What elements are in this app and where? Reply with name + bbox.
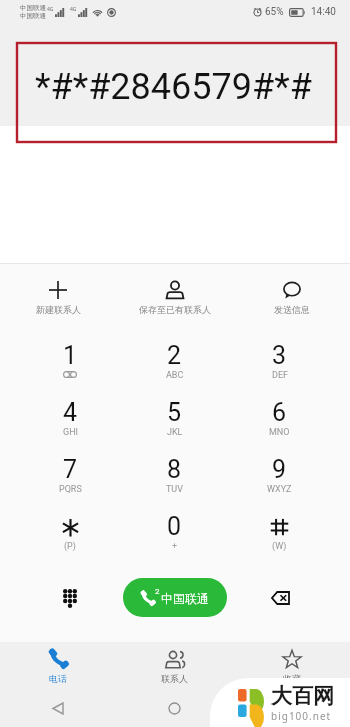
staticText: JKL <box>167 427 183 438</box>
button[interactable]: 保存至已有联系人 <box>116 264 233 331</box>
staticText: 65% <box>265 6 284 18</box>
button[interactable]: 新建联系人 <box>0 264 116 331</box>
staticText: *#*#2846579#*# <box>35 66 312 108</box>
staticText: MNO <box>269 427 290 438</box>
staticText: 2 <box>167 341 182 370</box>
staticText: 中国联通 <box>161 591 209 606</box>
button[interactable]: Home <box>116 690 233 727</box>
button[interactable]: 7 <box>18 445 122 502</box>
button[interactable]: 6 <box>227 388 332 445</box>
button[interactable]: 3 <box>227 331 332 388</box>
staticText: 中国联通 <box>20 4 46 12</box>
staticText: (W) <box>272 541 287 552</box>
staticText: big100.net <box>271 709 332 723</box>
staticText: 新建联系人 <box>36 304 81 315</box>
button[interactable]: 8 <box>122 445 227 502</box>
button[interactable]: 9 <box>227 445 332 502</box>
staticText: 8 <box>167 455 182 484</box>
staticText: 2 <box>155 587 160 596</box>
staticText: 4G <box>70 6 77 13</box>
button[interactable]: Recents <box>233 690 350 727</box>
staticText: 联系人 <box>161 673 188 684</box>
staticText: 9 <box>272 455 287 484</box>
staticText: (P) <box>64 541 76 552</box>
staticText: ABC <box>166 370 184 381</box>
button[interactable]: (P) <box>18 502 122 559</box>
staticText: GHI <box>63 427 78 438</box>
staticText: PQRS <box>59 484 82 495</box>
staticText: 3 <box>272 341 287 370</box>
staticText: 大百网 <box>271 683 334 709</box>
staticText: 发送信息 <box>274 304 310 315</box>
staticText: 收藏 <box>283 673 301 684</box>
staticText: 4 <box>63 398 78 427</box>
button[interactable]: 2 <box>122 331 227 388</box>
button[interactable]: 联系人 <box>116 642 233 690</box>
staticText: + <box>172 541 178 552</box>
button[interactable]: 5 <box>122 388 227 445</box>
button[interactable]: 2 <box>123 578 227 617</box>
button[interactable]: 1 <box>18 331 122 388</box>
staticText: 5 <box>167 398 182 427</box>
staticText: 6 <box>272 398 287 427</box>
button[interactable]: 4 <box>18 388 122 445</box>
staticText: 7 <box>63 455 78 484</box>
button[interactable]: 电话 <box>0 642 116 690</box>
button[interactable]: 发送信息 <box>233 264 350 331</box>
button[interactable]: (W) <box>227 502 332 559</box>
staticText: 0 <box>167 512 182 541</box>
button[interactable]: Backspace <box>254 572 306 624</box>
staticText: 14:40 <box>311 6 336 18</box>
staticText: 电话 <box>49 673 67 684</box>
staticText: TUV <box>166 484 183 495</box>
staticText: 保存至已有联系人 <box>139 304 211 315</box>
button[interactable]: 收藏 <box>233 642 350 690</box>
button[interactable]: 0 <box>122 502 227 559</box>
staticText: 中国联通 <box>20 12 46 20</box>
staticText: DEF <box>272 370 288 381</box>
button[interactable]: Back <box>0 690 116 727</box>
staticText: WXYZ <box>267 484 292 495</box>
staticText: 4G <box>47 6 54 13</box>
button[interactable]: Keypad <box>44 572 96 624</box>
staticText: 1 <box>63 341 78 370</box>
